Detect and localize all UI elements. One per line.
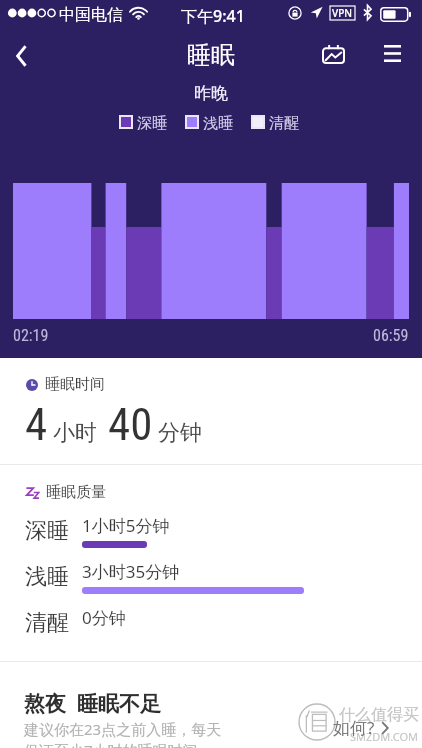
staticText: 清醒 — [25, 609, 69, 637]
staticText: 3小时35分钟 — [82, 560, 180, 583]
staticText: 下午9:41 — [181, 5, 245, 27]
staticText: 什么值得买 — [339, 705, 419, 725]
button[interactable]: 如何? — [333, 716, 389, 739]
button[interactable]: Statistics — [311, 34, 355, 78]
staticText: 睡眠时间 — [45, 375, 105, 394]
staticText: 深睡 — [137, 114, 167, 130]
staticText: 0分钟 — [82, 606, 126, 629]
staticText: VPN — [332, 6, 353, 20]
staticText: 如何? — [333, 716, 375, 739]
staticText: 深睡 — [25, 517, 69, 545]
staticText: 06:59 — [373, 326, 409, 345]
staticText: 睡眠质量 — [46, 483, 106, 502]
staticText: 熬夜 睡眠不足 — [24, 689, 161, 718]
staticText: 睡眠 — [187, 40, 235, 70]
staticText: 建议你在23点之前入睡，每天 保证至少7小时的睡眠时间 — [24, 719, 222, 748]
staticText: 昨晚 — [194, 83, 228, 103]
staticText: SMZDM.COM — [350, 729, 419, 744]
staticText: 清醒 — [269, 114, 299, 130]
staticText: 中国电信 — [59, 5, 123, 25]
staticText: 1小时5分钟 — [82, 514, 170, 537]
staticText: 小时 — [53, 419, 97, 447]
staticText: 02:19 — [13, 326, 49, 345]
button[interactable]: Back — [0, 32, 48, 80]
staticText: 40 — [108, 398, 153, 451]
staticText: 分钟 — [158, 419, 202, 447]
staticText: 4 — [25, 398, 48, 451]
button[interactable]: Menu — [370, 34, 414, 78]
staticText: 浅睡 — [25, 563, 69, 591]
staticText: 浅睡 — [203, 114, 233, 130]
